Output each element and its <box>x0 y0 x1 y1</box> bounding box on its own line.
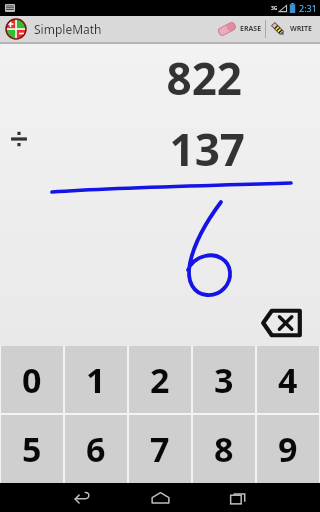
button[interactable]: 2 <box>129 346 191 413</box>
button[interactable]: Backspace <box>258 306 304 340</box>
button[interactable]: Home <box>140 483 180 512</box>
staticText: 9 <box>278 426 298 472</box>
button[interactable]: 5 <box>1 415 63 483</box>
staticText: 8 <box>214 426 234 472</box>
button[interactable]: ERASE <box>213 16 265 42</box>
staticText: 137 <box>169 119 245 179</box>
staticText: WRITE <box>290 24 313 34</box>
button[interactable]: Back <box>62 483 102 512</box>
button[interactable]: 3 <box>193 346 255 413</box>
staticText: 4 <box>278 357 298 403</box>
button[interactable]: Recent apps <box>218 483 258 512</box>
button[interactable]: 7 <box>129 415 191 483</box>
staticText: 6 <box>86 426 106 472</box>
other: App icon <box>6 19 26 39</box>
button[interactable]: 4 <box>257 346 319 413</box>
staticText: ERASE <box>240 24 262 34</box>
staticText: 1 <box>86 357 106 403</box>
staticText: 3G <box>271 5 278 12</box>
button[interactable]: 6 <box>65 415 127 483</box>
staticText: SimpleMath <box>34 21 102 37</box>
button[interactable]: 9 <box>257 415 319 483</box>
button[interactable]: 8 <box>193 415 255 483</box>
staticText: 2 <box>150 357 170 403</box>
staticText: 7 <box>150 426 170 472</box>
button[interactable]: 0 <box>1 346 63 413</box>
button[interactable]: 1 <box>65 346 127 413</box>
staticText: 0 <box>22 357 42 403</box>
button[interactable]: WRITE <box>266 16 316 42</box>
staticText: 3 <box>214 357 234 403</box>
staticText: 5 <box>22 426 42 472</box>
staticText: 822 <box>166 48 242 108</box>
staticText: 2:31 <box>299 2 317 14</box>
